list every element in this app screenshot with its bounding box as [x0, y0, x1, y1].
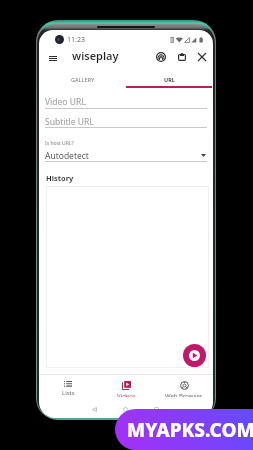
- button[interactable]: Back: [87, 402, 101, 416]
- staticText: Subtitle URL: [45, 116, 94, 128]
- staticText: wiseplay: [72, 48, 119, 63]
- staticText: Video URL: [45, 96, 86, 108]
- button[interactable]: URL: [126, 70, 213, 88]
- staticText: GALLERY: [71, 76, 95, 83]
- staticText: 11:23: [67, 35, 85, 45]
- button[interactable]: Menu: [44, 50, 61, 67]
- button[interactable]: Autodetect: [45, 150, 207, 161]
- button[interactable]: Close: [193, 48, 211, 66]
- staticText: Autodetect: [45, 150, 89, 161]
- staticText: Lists: [62, 389, 75, 397]
- button[interactable]: Home: [118, 402, 132, 416]
- button[interactable]: Paste: [173, 48, 191, 66]
- button[interactable]: Recents: [149, 402, 163, 416]
- button[interactable]: Web Browser: [155, 375, 213, 397]
- staticText: Web Browser: [165, 392, 203, 397]
- staticText: History: [46, 173, 74, 183]
- button[interactable]: Cast: [152, 48, 170, 66]
- button[interactable]: Lists: [39, 375, 97, 397]
- staticText: MYAPKS.COM: [127, 417, 253, 443]
- button[interactable]: GALLERY: [39, 70, 126, 88]
- staticText: Is host URL?: [45, 140, 74, 147]
- staticText: Videos: [117, 392, 136, 397]
- button[interactable]: Videos: [97, 375, 155, 397]
- staticText: URL: [164, 76, 175, 83]
- button[interactable]: Play: [183, 344, 206, 367]
